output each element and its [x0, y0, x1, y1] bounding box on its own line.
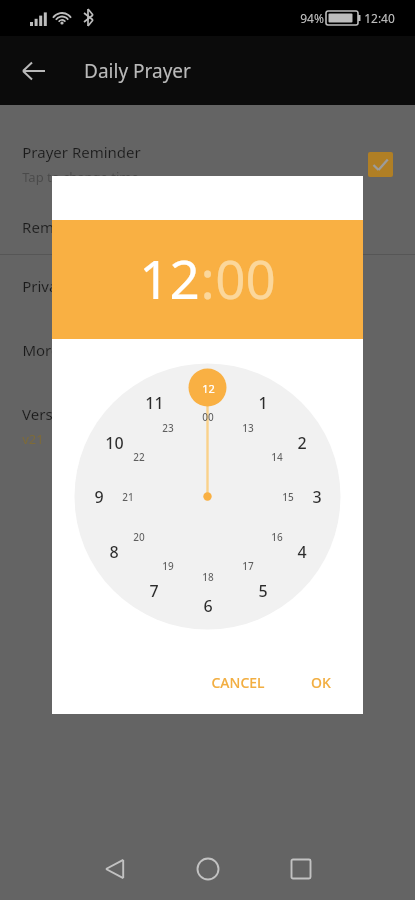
staticText: Privacy Policy: [22, 276, 117, 296]
staticText: 12: [202, 381, 215, 396]
staticText: 14: [271, 450, 283, 464]
button[interactable]: Privacy Policy: [0, 276, 415, 296]
staticText: 10: [105, 432, 124, 454]
staticText: More Apps: [22, 340, 99, 360]
button[interactable]: 12: [139, 242, 200, 314]
staticText: 00: [215, 242, 276, 314]
staticText: Prayer Reminder: [22, 142, 141, 162]
button[interactable]: Reminder Sound: [0, 217, 415, 237]
staticText: 16: [271, 530, 283, 544]
button[interactable]: Version: [0, 404, 415, 448]
staticText: 18: [202, 570, 214, 584]
button[interactable]: CANCEL: [201, 664, 275, 701]
staticText: Daily Prayer: [84, 58, 191, 84]
staticText: OK: [311, 673, 331, 692]
staticText: 94%: [300, 10, 324, 26]
button[interactable]: More Apps: [0, 340, 415, 360]
staticText: 3: [312, 486, 322, 508]
button[interactable]: Back: [93, 846, 139, 892]
staticText: 23: [162, 421, 174, 435]
button[interactable]: Prayer Reminder: [0, 142, 415, 186]
button[interactable]: Home: [185, 846, 231, 892]
staticText: 17: [242, 559, 254, 573]
staticText: 00: [202, 410, 214, 424]
button[interactable]: Recent apps: [278, 846, 324, 892]
staticText: 12: [139, 242, 200, 314]
button[interactable]: Back: [13, 50, 55, 92]
staticText: 9: [94, 486, 104, 508]
button[interactable]: [52, 339, 363, 650]
staticText: 12:40: [364, 10, 395, 26]
staticText: 6: [203, 595, 213, 617]
button[interactable]: OK: [301, 664, 341, 701]
staticText: 5: [258, 580, 268, 602]
staticText: Reminder Sound: [22, 217, 140, 237]
staticText: 20: [133, 530, 145, 544]
staticText: 19: [162, 559, 174, 573]
staticText: 21: [122, 490, 134, 504]
staticText: 13: [242, 421, 254, 435]
staticText: 15: [282, 490, 294, 504]
staticText: v21: [22, 430, 44, 448]
staticText: 7: [149, 580, 159, 602]
staticText: 4: [297, 541, 307, 563]
staticText: 8: [109, 541, 119, 563]
staticText: 22: [133, 450, 145, 464]
staticText: CANCEL: [211, 673, 265, 692]
staticText: 1: [258, 392, 268, 414]
button[interactable]: 00: [215, 242, 276, 314]
staticText: 2: [297, 432, 307, 454]
staticText: Tap to change time: [22, 168, 139, 186]
staticText: 11: [145, 392, 164, 414]
staticText: :: [200, 242, 215, 314]
staticText: Version: [22, 404, 75, 424]
